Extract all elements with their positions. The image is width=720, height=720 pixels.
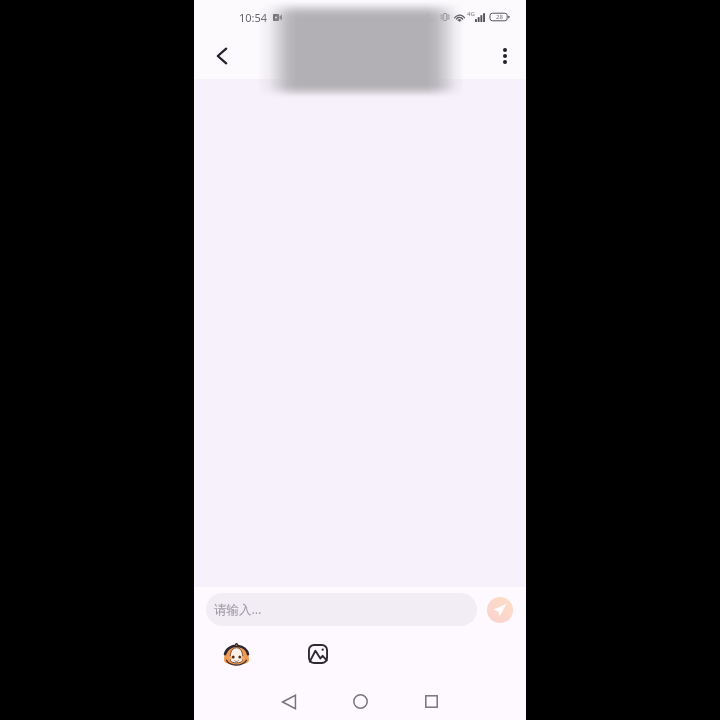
button[interactable]: Back <box>269 683 309 720</box>
button[interactable]: 请输入… <box>206 593 477 626</box>
button[interactable]: More options <box>485 36 525 76</box>
button[interactable]: Home <box>340 683 380 720</box>
button[interactable]: Recent apps <box>411 683 451 720</box>
staticText: 4G <box>467 10 475 18</box>
button[interactable]: Emoji <box>220 638 252 670</box>
staticText: 28 <box>496 13 503 21</box>
staticText: 10:54 <box>239 10 268 25</box>
button[interactable]: Back <box>202 36 242 76</box>
staticText: 请输入… <box>214 601 262 618</box>
button[interactable]: Picture <box>302 638 334 670</box>
button[interactable]: Send <box>487 597 513 623</box>
